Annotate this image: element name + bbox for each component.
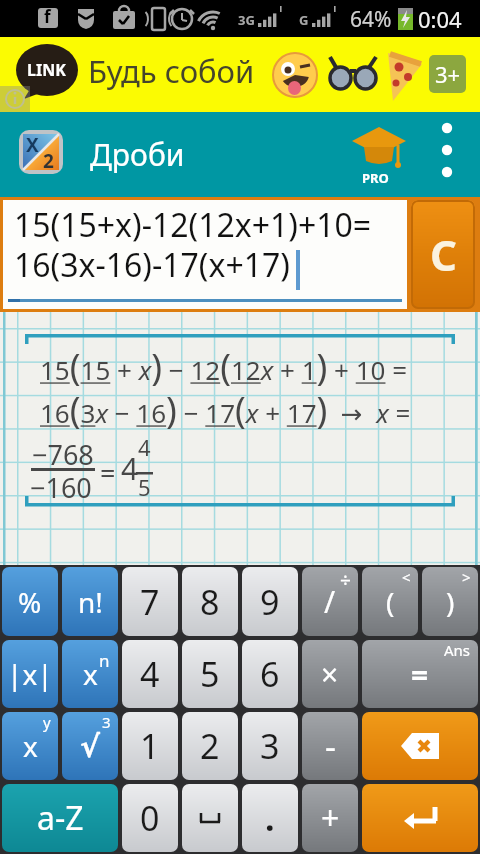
staticText: 9 xyxy=(260,579,280,625)
staticText: > xyxy=(462,567,471,587)
staticText: 15(15+x)-12(12x+1)+10= xyxy=(14,203,372,247)
staticText: < xyxy=(402,567,411,587)
staticText: PRO xyxy=(362,169,389,187)
button[interactable]: C xyxy=(411,200,475,309)
staticText: 3G xyxy=(238,11,255,29)
button[interactable]: + xyxy=(302,784,358,852)
button[interactable]: x xyxy=(2,712,58,780)
staticText: . xyxy=(265,795,275,841)
staticText: 5 xyxy=(138,472,151,502)
staticText: Ans xyxy=(444,640,471,660)
staticText: + xyxy=(321,796,340,840)
button[interactable]: 4 xyxy=(122,640,178,708)
staticText: x xyxy=(83,655,98,693)
staticText: f xyxy=(44,5,51,28)
button[interactable] xyxy=(362,712,478,780)
staticText: × xyxy=(321,654,339,695)
button[interactable]: 6 xyxy=(242,640,298,708)
staticText: n xyxy=(99,649,110,672)
staticText: 16(3x − 16) − 17(x + 17) → x = xyxy=(40,385,411,434)
button[interactable]: . xyxy=(242,784,298,852)
staticText: 7 xyxy=(140,579,160,625)
button[interactable]: 3 xyxy=(242,712,298,780)
button[interactable]: LINK xyxy=(0,37,480,112)
button[interactable]: / xyxy=(302,567,358,636)
button[interactable]: 1 xyxy=(122,712,178,780)
button[interactable]: - xyxy=(302,712,358,780)
button[interactable] xyxy=(362,784,478,852)
button[interactable]: 2 xyxy=(182,712,238,780)
button[interactable]: 0 xyxy=(122,784,178,852)
button[interactable]: x xyxy=(62,640,118,708)
staticText: 3 xyxy=(260,723,280,769)
staticText: 15(15 + x) − 12(12x + 1) + 10 = xyxy=(40,342,408,391)
staticText: 3+ xyxy=(435,59,461,89)
staticText: Дроби xyxy=(90,134,185,175)
staticText: = xyxy=(100,454,116,491)
staticText: y xyxy=(43,712,51,732)
button[interactable]: 15(15+x)-12(12x+1)+10= xyxy=(3,200,407,309)
staticText: - xyxy=(325,723,336,769)
staticText: √ xyxy=(80,729,101,764)
button[interactable]: × xyxy=(302,640,358,708)
button[interactable]: = xyxy=(362,640,478,708)
button[interactable]: |x| xyxy=(2,640,58,708)
staticText: 2 xyxy=(200,723,220,769)
button[interactable]: n! xyxy=(62,567,118,636)
button[interactable]: 8 xyxy=(182,567,238,636)
button[interactable]: ) xyxy=(422,567,478,636)
button[interactable]: PRO xyxy=(348,117,410,193)
staticText: 5 xyxy=(200,651,220,697)
staticText: n! xyxy=(78,583,103,621)
staticText: |x| xyxy=(7,655,53,693)
button[interactable]: 7 xyxy=(122,567,178,636)
staticText: a-Z xyxy=(37,796,84,840)
staticText: = xyxy=(411,654,429,695)
button[interactable] xyxy=(182,784,238,852)
staticText: 2 xyxy=(43,148,54,174)
button[interactable]: a-Z xyxy=(2,784,118,852)
staticText: −768 xyxy=(32,436,94,473)
staticText: −160 xyxy=(30,469,92,506)
button[interactable]: ( xyxy=(362,567,418,636)
staticText: 3 xyxy=(102,712,111,732)
staticText: % xyxy=(18,583,42,621)
button[interactable]: 9 xyxy=(242,567,298,636)
button[interactable]: 5 xyxy=(182,640,238,708)
button[interactable] xyxy=(424,117,468,193)
staticText: ) xyxy=(446,583,455,621)
staticText: Будь собой xyxy=(88,50,255,92)
staticText: 4 xyxy=(138,432,151,462)
staticText: 4 xyxy=(140,651,160,697)
staticText: 0:04 xyxy=(418,4,462,34)
staticText: ÷ xyxy=(340,567,351,593)
staticText: C xyxy=(430,226,457,283)
staticText: LINK xyxy=(27,59,66,81)
staticText: 0 xyxy=(140,795,160,841)
staticText: 64% xyxy=(350,5,392,34)
button[interactable]: % xyxy=(2,567,58,636)
staticText: X xyxy=(26,132,39,158)
staticText: 1 xyxy=(140,723,160,769)
staticText: 6 xyxy=(260,651,280,697)
button[interactable]: √ xyxy=(62,712,118,780)
staticText: x xyxy=(23,727,38,765)
staticText: 8 xyxy=(200,579,220,625)
staticText: 4 xyxy=(121,448,139,489)
staticText: 16(3x-16)-17(x+17) xyxy=(14,243,290,287)
staticText: ( xyxy=(386,583,395,621)
staticText: G xyxy=(299,11,309,29)
staticText: / xyxy=(324,581,336,622)
